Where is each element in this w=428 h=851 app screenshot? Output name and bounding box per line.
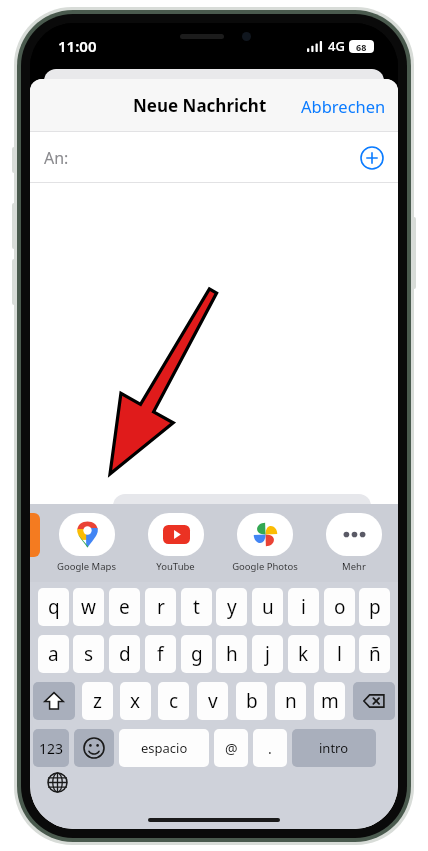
staticText: j xyxy=(265,641,270,667)
staticText: b xyxy=(246,688,258,714)
button[interactable]: @ xyxy=(214,729,248,767)
staticText: 4G xyxy=(328,37,345,55)
staticText: Neue Nachricht xyxy=(133,94,267,117)
button[interactable]: o xyxy=(324,588,355,626)
button[interactable]: . xyxy=(253,729,287,767)
staticText: z xyxy=(93,688,102,714)
button[interactable]: An: xyxy=(30,132,398,183)
button[interactable]: d xyxy=(109,635,140,673)
staticText: intro xyxy=(319,739,349,757)
staticText: g xyxy=(191,641,203,667)
button[interactable]: a xyxy=(38,635,69,673)
button[interactable]: Abbrechen xyxy=(289,87,398,125)
staticText: Google Photos xyxy=(232,560,298,573)
staticText: x xyxy=(130,688,141,714)
staticText: n xyxy=(285,688,297,714)
staticText: p xyxy=(369,594,381,620)
button[interactable]: s xyxy=(73,635,104,673)
button[interactable]: m xyxy=(314,682,345,720)
button[interactable]: Emoji xyxy=(74,729,114,767)
button[interactable]: q xyxy=(38,588,69,626)
staticText: 68 xyxy=(356,41,367,53)
button[interactable]: intro xyxy=(292,729,376,767)
button[interactable]: e xyxy=(109,588,140,626)
button[interactable]: z xyxy=(82,682,113,720)
staticText: 123 xyxy=(39,739,64,758)
staticText: Abbrechen xyxy=(301,95,386,117)
button[interactable]: j xyxy=(252,635,283,673)
button[interactable]: Löschen xyxy=(353,682,395,720)
staticText: YouTube xyxy=(156,560,195,573)
staticText: v xyxy=(208,688,218,714)
staticText: 11:00 xyxy=(58,36,97,56)
button[interactable]: y xyxy=(216,588,247,626)
button[interactable]: c xyxy=(158,682,189,720)
button[interactable]: Kontakt hinzufügen xyxy=(360,146,384,170)
button[interactable]: w xyxy=(73,588,104,626)
staticText: d xyxy=(119,641,131,667)
button[interactable]: ñ xyxy=(359,635,390,673)
staticText: w xyxy=(81,594,96,620)
staticText: o xyxy=(334,594,346,620)
staticText: r xyxy=(157,594,165,620)
staticText: s xyxy=(84,641,94,667)
button[interactable]: t xyxy=(181,588,212,626)
staticText: e xyxy=(119,594,130,620)
staticText: y xyxy=(227,594,237,620)
button[interactable]: Google Maps xyxy=(42,513,131,573)
staticText: a xyxy=(48,641,59,667)
button[interactable]: b xyxy=(236,682,267,720)
button[interactable]: i xyxy=(288,588,319,626)
staticText: t xyxy=(193,594,200,620)
staticText: Google Maps xyxy=(57,560,116,573)
button[interactable]: k xyxy=(288,635,319,673)
staticText: h xyxy=(226,641,238,667)
button[interactable]: h xyxy=(216,635,247,673)
button[interactable]: YouTube xyxy=(131,513,220,573)
button[interactable]: u xyxy=(252,588,283,626)
staticText: m xyxy=(321,688,339,714)
staticText: Mehr xyxy=(342,560,366,573)
staticText: espacio xyxy=(141,739,188,757)
button[interactable]: Google Photos xyxy=(220,513,309,573)
button[interactable]: l xyxy=(324,635,355,673)
staticText: u xyxy=(262,594,274,620)
button[interactable]: v xyxy=(197,682,228,720)
staticText: ñ xyxy=(369,641,381,667)
staticText: c xyxy=(169,688,179,714)
button[interactable]: r xyxy=(145,588,176,626)
staticText: . xyxy=(268,739,272,758)
staticText: An: xyxy=(44,147,69,169)
button[interactable]: p xyxy=(359,588,390,626)
staticText: f xyxy=(157,641,164,667)
staticText: i xyxy=(301,594,306,620)
button[interactable]: f xyxy=(145,635,176,673)
button[interactable]: x xyxy=(120,682,151,720)
button[interactable]: Mehr xyxy=(309,513,398,573)
staticText: @ xyxy=(225,739,238,758)
button[interactable]: g xyxy=(181,635,212,673)
staticText: k xyxy=(298,641,309,667)
button[interactable]: espacio xyxy=(119,729,209,767)
staticText: q xyxy=(48,594,60,620)
button[interactable]: Sprache wechseln xyxy=(44,769,70,795)
button[interactable]: n xyxy=(275,682,306,720)
staticText: l xyxy=(337,641,342,667)
button[interactable]: 123 xyxy=(33,729,69,767)
button[interactable]: Umschalt xyxy=(33,682,75,720)
